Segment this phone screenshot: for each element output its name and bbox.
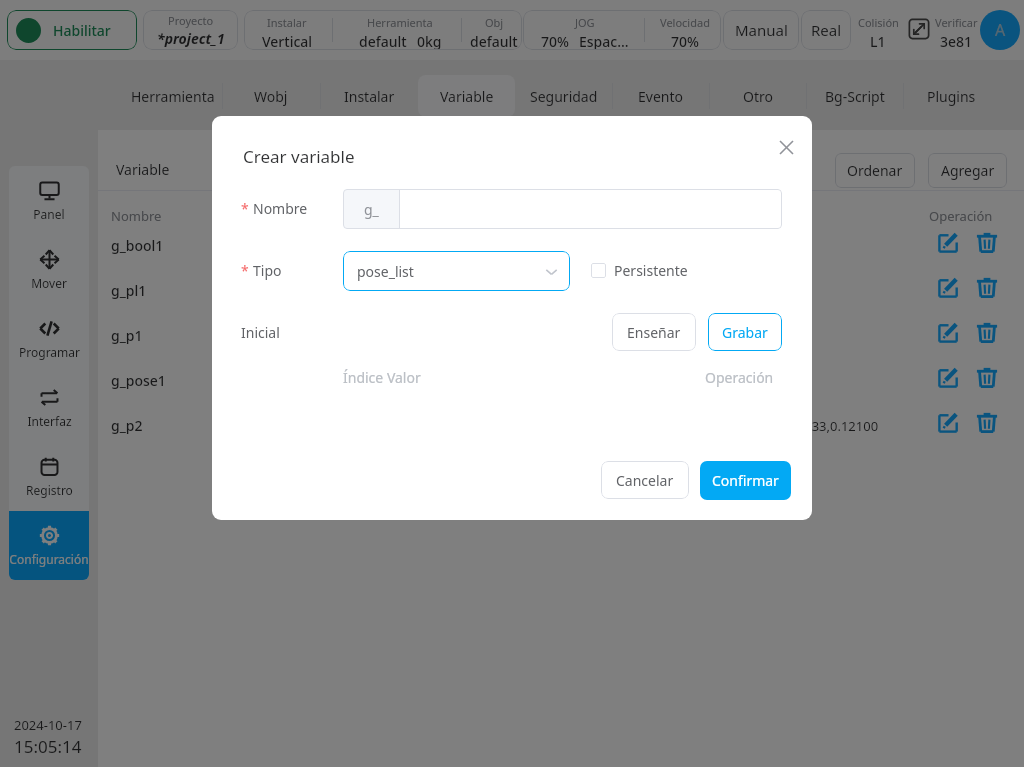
button[interactable]: Cancelar	[601, 461, 689, 499]
staticText: g_p1	[111, 326, 143, 345]
staticText: Espac…	[579, 32, 629, 50]
staticText: Tipo	[253, 261, 282, 280]
staticText: ...86,-3.069533,0.12100	[738, 417, 879, 435]
staticText: Obj	[485, 15, 504, 30]
button[interactable]: JOG	[523, 10, 721, 50]
staticText: *project_1	[157, 29, 225, 48]
button[interactable]: Bg-Script	[806, 75, 903, 117]
staticText: Índice Valor	[343, 368, 421, 387]
button[interactable]: Enseñar	[612, 313, 696, 351]
button[interactable]: Ordenar	[835, 153, 915, 188]
staticText: Mover	[31, 275, 67, 291]
button[interactable]: A	[980, 10, 1020, 50]
staticText: 70%	[541, 32, 569, 50]
button[interactable]: Agregar	[928, 153, 1007, 188]
staticText: Manual	[735, 20, 788, 40]
staticText: Agregar	[941, 161, 995, 180]
staticText: Panel	[33, 206, 65, 222]
staticText: Herramienta	[367, 15, 433, 30]
staticText: Variable	[440, 87, 494, 106]
button[interactable]: Configuración	[9, 511, 89, 580]
button[interactable]: Seguridad	[515, 75, 612, 117]
staticText: Grabar	[722, 323, 768, 342]
button[interactable]: Eliminar	[973, 408, 1001, 436]
staticText: Inicial	[241, 323, 280, 342]
button[interactable]: pose_list	[343, 251, 570, 291]
staticText: Nombre	[253, 199, 308, 218]
button[interactable]: Editar	[935, 318, 963, 346]
button[interactable]: Plugins	[903, 75, 1000, 117]
button[interactable]: Eliminar	[973, 318, 1001, 346]
button[interactable]: Panel	[9, 166, 89, 235]
button[interactable]: Otro	[709, 75, 806, 117]
staticText: Persistente	[614, 261, 688, 280]
button[interactable]: Persistente	[591, 261, 688, 280]
button[interactable]: Grabar	[708, 313, 782, 351]
button[interactable]: Proyecto	[143, 10, 238, 50]
staticText: *	[241, 199, 249, 218]
staticText: Otro	[743, 87, 773, 106]
staticText: Nombre	[111, 207, 162, 225]
staticText: pose_list	[357, 262, 414, 281]
button[interactable]: Real	[801, 10, 851, 50]
staticText: Instalar	[344, 87, 395, 106]
staticText: g_p2	[111, 416, 143, 435]
button[interactable]: Wobj	[222, 75, 320, 117]
staticText: Habilitar	[53, 21, 111, 40]
button[interactable]: Mover	[9, 235, 89, 304]
staticText: Crear variable	[243, 145, 355, 168]
button[interactable]: Manual	[723, 10, 799, 50]
button[interactable]: Variable	[418, 75, 515, 117]
staticText: Configuración	[9, 551, 89, 567]
button[interactable]: Editar	[935, 273, 963, 301]
staticText: g_pl1	[111, 281, 147, 300]
button[interactable]: Evento	[612, 75, 709, 117]
staticText: Velocidad	[660, 15, 710, 30]
button[interactable]: Editar	[935, 228, 963, 256]
staticText: g_bool1	[111, 236, 164, 255]
staticText: 70%	[671, 32, 699, 50]
button[interactable]: Expandir	[905, 15, 933, 43]
staticText: Instalar	[267, 15, 307, 30]
staticText: Bg-Script	[825, 87, 885, 106]
button[interactable]: Eliminar	[973, 273, 1001, 301]
staticText: Verificar	[935, 15, 978, 30]
button[interactable]: Instalar	[244, 10, 522, 50]
staticText: Interfaz	[27, 413, 72, 429]
staticText: Enseñar	[627, 323, 681, 342]
staticText: Seguridad	[530, 87, 598, 106]
staticText: Proyecto	[168, 13, 214, 28]
staticText: Plugins	[927, 87, 976, 106]
staticText: {...0796}	[738, 372, 789, 390]
staticText: Ordenar	[847, 161, 903, 180]
button[interactable]: Editar	[935, 408, 963, 436]
staticText: 2024-10-17	[14, 716, 82, 734]
staticText: JOG	[575, 15, 595, 30]
button[interactable]: Editar	[935, 363, 963, 391]
button[interactable]: Habilitar	[7, 10, 137, 50]
staticText: Real	[811, 20, 842, 40]
staticText: default	[470, 32, 518, 50]
staticText: g_	[364, 200, 379, 219]
button[interactable]: Herramienta	[124, 75, 222, 117]
button[interactable]: Programar	[9, 304, 89, 373]
staticText: Operación	[705, 368, 774, 387]
button[interactable]: Registro	[9, 442, 89, 511]
staticText: 0kg	[417, 32, 442, 50]
staticText: Herramienta	[131, 87, 215, 106]
button[interactable]: Instalar	[320, 75, 418, 117]
staticText: Cancelar	[616, 471, 674, 490]
button[interactable]: Confirmar	[700, 461, 791, 500]
button[interactable]: Eliminar	[973, 228, 1001, 256]
staticText: Operación	[929, 207, 993, 225]
button[interactable]: Cerrar	[774, 135, 798, 159]
staticText: Confirmar	[712, 471, 779, 490]
button[interactable]: Interfaz	[9, 373, 89, 442]
staticText: Wobj	[254, 87, 288, 106]
staticText: L1	[870, 32, 886, 51]
staticText: Variable	[116, 160, 170, 179]
staticText: Vertical	[262, 32, 313, 50]
staticText: Evento	[638, 87, 683, 106]
staticText: Programar	[19, 344, 80, 360]
button[interactable]: Eliminar	[973, 363, 1001, 391]
